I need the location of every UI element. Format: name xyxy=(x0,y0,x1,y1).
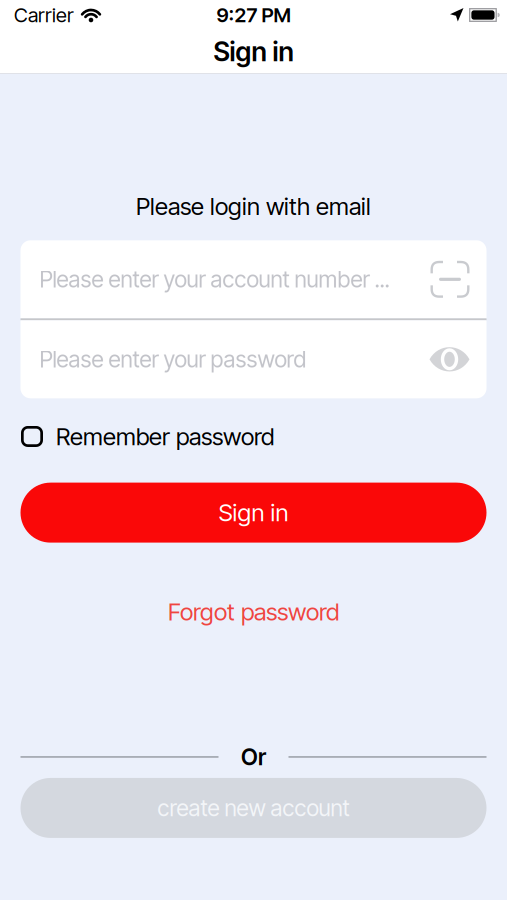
button[interactable]: Remember password xyxy=(21,422,274,451)
staticText: Sign in xyxy=(218,498,288,527)
staticText: Please enter your password xyxy=(39,346,306,373)
button[interactable]: Forgot password xyxy=(168,598,339,626)
staticText: Carrier xyxy=(14,3,74,27)
button[interactable]: create new account xyxy=(20,778,486,838)
staticText: Please login with email xyxy=(136,192,371,220)
staticText: Or xyxy=(241,744,266,770)
staticText: Remember password xyxy=(56,422,274,451)
staticText: 9:27 PM xyxy=(216,3,290,27)
staticText: Sign in xyxy=(213,36,293,67)
staticText: Forgot password xyxy=(168,598,339,626)
staticText: create new account xyxy=(157,795,349,821)
staticText: Please enter your account number ... xyxy=(39,266,389,293)
button[interactable]: Please enter your password xyxy=(20,320,486,398)
button[interactable]: Please enter your account number ... xyxy=(20,240,486,318)
button[interactable]: Sign in xyxy=(20,483,486,543)
